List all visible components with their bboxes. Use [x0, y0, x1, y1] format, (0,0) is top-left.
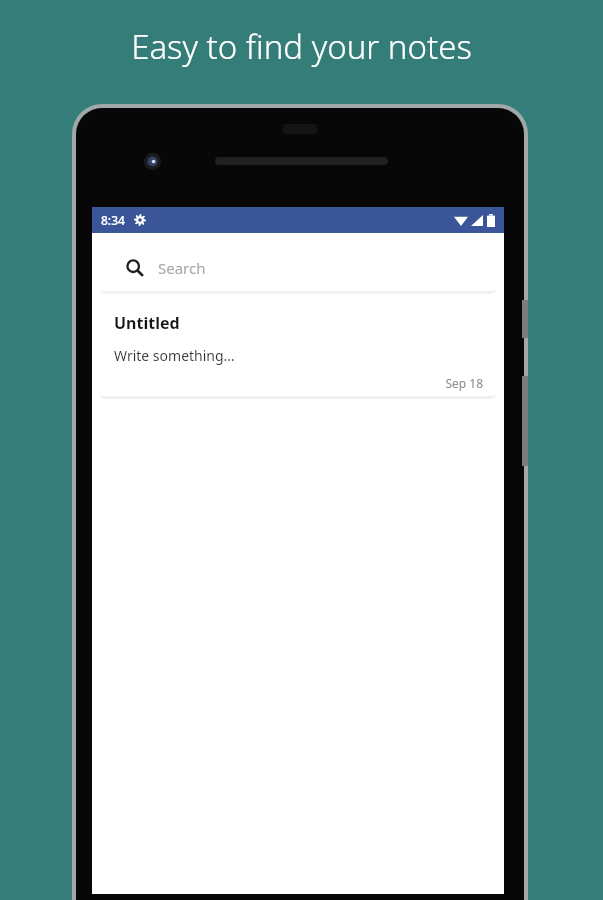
staticText: Search	[158, 258, 206, 278]
staticText: Untitled	[114, 312, 180, 334]
button[interactable]: Untitled	[100, 298, 496, 396]
staticText: Sep 18	[100, 375, 483, 391]
button[interactable]: Search	[100, 244, 496, 291]
staticText: Easy to find your notes	[0, 24, 603, 69]
other: Settings	[134, 214, 146, 226]
staticText: 8:34	[101, 212, 125, 228]
staticText: Write something…	[114, 346, 235, 365]
